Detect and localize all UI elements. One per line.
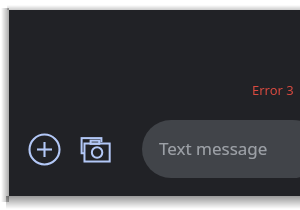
button[interactable]: Text message	[142, 120, 300, 178]
staticText: Text message	[159, 137, 268, 160]
staticText: Error 3	[252, 81, 294, 99]
button[interactable]: Camera	[78, 132, 114, 168]
button[interactable]: Attach	[26, 131, 63, 168]
